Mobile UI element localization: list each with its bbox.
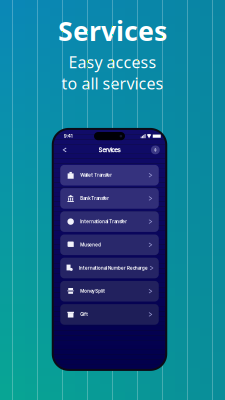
button[interactable]: Sort bbox=[151, 142, 165, 157]
staticText: Gift bbox=[80, 312, 88, 317]
staticText: International Number Recharge bbox=[79, 265, 148, 271]
button[interactable]: Money Split bbox=[60, 281, 159, 301]
staticText: Money Split bbox=[80, 288, 105, 294]
button[interactable]: Gift bbox=[60, 304, 159, 325]
staticText: Services bbox=[58, 13, 167, 48]
staticText: Bank Transfer bbox=[80, 196, 109, 201]
button[interactable]: International Number Recharge bbox=[60, 258, 159, 278]
staticText: Wallet Transfer bbox=[80, 172, 112, 178]
button[interactable]: Musened bbox=[60, 234, 159, 255]
staticText: International Transfer bbox=[80, 219, 127, 224]
staticText: Musened bbox=[80, 242, 101, 248]
button[interactable]: Back bbox=[54, 143, 68, 157]
button[interactable]: Wallet Transfer bbox=[60, 165, 159, 185]
staticText: 9:41 bbox=[64, 133, 73, 139]
staticText: Easy access bbox=[68, 51, 156, 73]
button[interactable]: Bank Transfer bbox=[60, 188, 159, 209]
staticText: Services bbox=[98, 146, 120, 154]
button[interactable]: International Transfer bbox=[60, 211, 159, 232]
staticText: to all services bbox=[61, 73, 163, 94]
